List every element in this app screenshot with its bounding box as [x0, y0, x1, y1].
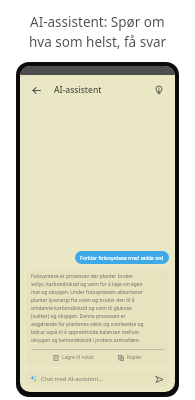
button[interactable]: Kopier: [115, 353, 145, 362]
staticText: sollys, karbondioksid og vann for å lage…: [31, 281, 143, 288]
button[interactable]: Lagre til notat: [50, 353, 97, 362]
staticText: avgjørende for plantenes vekst og overle…: [31, 321, 144, 328]
staticText: AI-assistent: [54, 84, 102, 96]
staticText: planter lysenergi fra solen og bruker de…: [31, 297, 135, 304]
staticText: Chat med AI-assistent...: [41, 375, 103, 383]
staticText: AI-assistent: Spør om: [30, 13, 165, 31]
staticText: oksygen og karbondioksid i jordens atmos…: [31, 337, 141, 344]
button[interactable]: Send: [153, 373, 165, 385]
staticText: Kopier: [127, 354, 142, 361]
button[interactable]: Forslag: [150, 81, 168, 99]
staticText: hva som helst, få svar: [29, 33, 167, 51]
staticText: bidrar også til å opprettholde balansen …: [31, 329, 140, 336]
staticText: omdanne karbondioksid og vann til glukos…: [31, 305, 132, 312]
staticText: Fotosyntese er prosessen der planter bru…: [31, 273, 134, 280]
button[interactable]: Forklar fotosyntese med enkle ord: [75, 251, 169, 264]
staticText: Lagre til notat: [62, 354, 94, 361]
button[interactable]: Tilbake: [27, 81, 45, 99]
staticText: (sukker) og oksygen. Denne prosessen er: [31, 313, 126, 320]
staticText: mat og oksygen. Under fotosyntesen absor…: [31, 289, 143, 296]
button[interactable]: Chat med AI-assistent...: [25, 370, 170, 387]
button[interactable]: Fotosyntese er prosessen der planter bru…: [26, 269, 169, 366]
staticText: Forklar fotosyntese med enkle ord: [80, 254, 164, 261]
